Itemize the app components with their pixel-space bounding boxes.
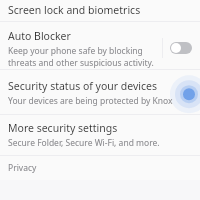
staticText: Secure Folder, Secure Wi-Fi, and more. [8, 137, 160, 149]
button[interactable]: Auto Blocker [0, 22, 200, 69]
staticText: threats and other suspicious activity. [8, 57, 154, 69]
staticText: Screen lock and biometrics [8, 3, 141, 17]
button[interactable]: Security status of your devices [0, 70, 200, 114]
button[interactable]: More security settings [0, 115, 200, 155]
staticText: Auto Blocker [8, 29, 71, 43]
staticText: Your devices are being protected by Knox… [8, 95, 200, 107]
staticText: Security status of your devices [8, 79, 158, 93]
staticText: Keep your phone safe by blocking [8, 45, 143, 57]
staticText: More security settings [8, 121, 118, 135]
button[interactable]: Auto Blocker toggle [170, 42, 192, 54]
staticText: Privacy [8, 162, 37, 174]
button[interactable]: Screen lock and biometrics [0, 0, 200, 21]
